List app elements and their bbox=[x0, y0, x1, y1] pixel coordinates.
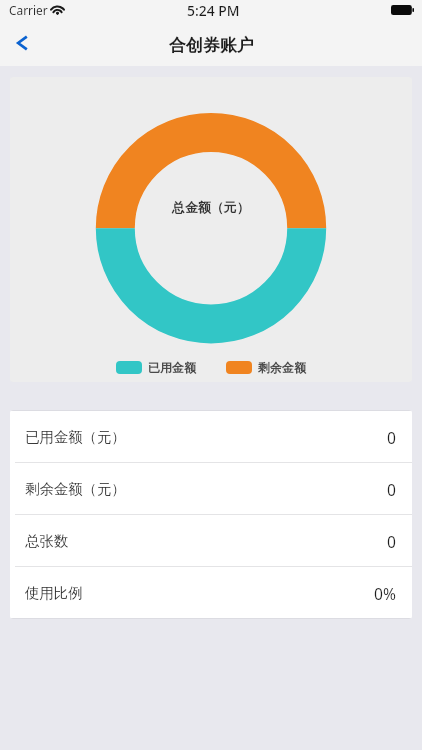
staticText: 总张数 bbox=[25, 532, 69, 550]
staticText: 已用金额（元） bbox=[25, 428, 126, 446]
staticText: 合创券账户 bbox=[169, 35, 254, 56]
staticText: 0 bbox=[387, 531, 396, 552]
staticText: 剩余金额 bbox=[258, 360, 306, 375]
button[interactable]: 使用比例 bbox=[10, 566, 412, 618]
staticText: 使用比例 bbox=[25, 584, 83, 602]
staticText: 已用金额 bbox=[148, 360, 196, 375]
button[interactable]: 已用金额（元） bbox=[10, 410, 412, 462]
staticText: 0% bbox=[374, 583, 396, 604]
staticText: 剩余金额（元） bbox=[25, 480, 126, 498]
button[interactable]: 总张数 bbox=[10, 514, 412, 566]
staticText: 0 bbox=[387, 479, 396, 500]
staticText: Carrier bbox=[9, 2, 48, 18]
staticText: 5:24 PM bbox=[187, 1, 240, 20]
staticText: 0 bbox=[387, 427, 396, 448]
staticText: 总金额（元） bbox=[172, 200, 250, 216]
button[interactable]: 剩余金额（元） bbox=[10, 462, 412, 514]
button[interactable]: Back bbox=[0, 20, 46, 66]
